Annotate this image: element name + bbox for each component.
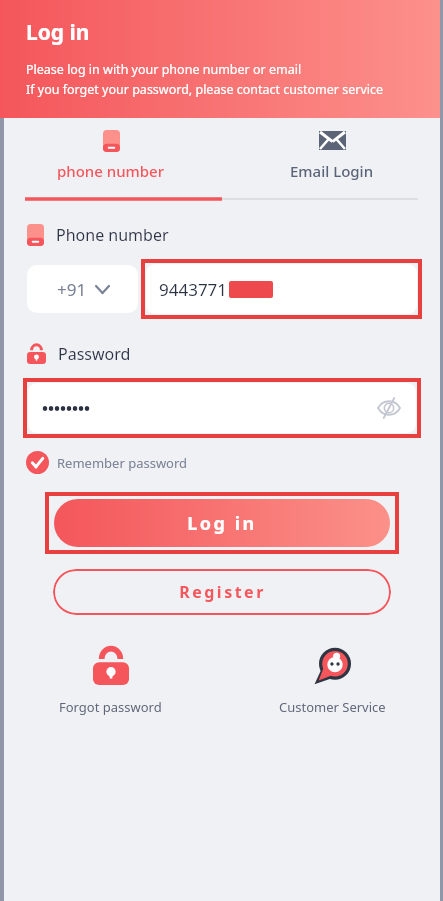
staticText: 9443771 [159,278,228,301]
staticText: Email Login [290,161,374,181]
staticText: +91 [57,278,87,301]
button[interactable]: Email Login [221,118,443,202]
button[interactable]: Remember password [26,451,188,474]
staticText: Password [58,343,131,365]
button[interactable]: Forgot password [0,647,221,716]
button[interactable]: Register [53,569,391,615]
button[interactable]: Customer Service [221,647,443,716]
staticText: phone number [57,161,165,181]
button[interactable]: phone number [0,118,221,202]
button[interactable]: Log in [54,499,390,547]
staticText: Register [179,581,266,603]
staticText: Remember password [57,454,188,472]
button[interactable]: +91 [27,265,138,313]
button[interactable]: Show password [376,395,402,421]
button[interactable]: 9443771 [146,264,417,314]
staticText: Customer Service [279,698,386,716]
staticText: Forgot password [59,698,162,716]
staticText: •••••••• [42,397,91,419]
staticText: Please log in with your phone number or … [26,61,302,78]
staticText: Log in [26,18,90,47]
button[interactable]: •••••••• [28,383,416,433]
staticText: Log in [187,511,257,536]
staticText: If you forget your password, please cont… [26,81,384,98]
staticText: Phone number [56,224,169,246]
